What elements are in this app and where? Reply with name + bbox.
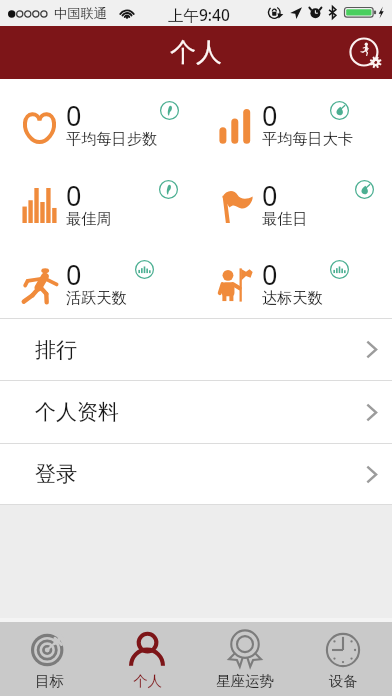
staticText: 0: [262, 177, 278, 214]
button[interactable]: 0: [0, 159, 196, 239]
button[interactable]: 登录: [0, 444, 392, 504]
staticText: 0: [262, 97, 278, 134]
staticText: 0: [262, 256, 278, 293]
staticText: 登录: [35, 461, 77, 487]
button[interactable]: 0: [0, 79, 196, 159]
staticText: 设备: [329, 672, 358, 690]
staticText: 排行: [35, 337, 77, 363]
button[interactable]: 个人: [98, 622, 196, 696]
staticText: 0: [66, 177, 82, 214]
button[interactable]: 0: [0, 239, 196, 318]
staticText: 平均每日大卡: [262, 129, 354, 148]
staticText: 0: [66, 256, 82, 293]
button[interactable]: 目标: [0, 622, 98, 696]
button[interactable]: Settings: [342, 29, 388, 75]
staticText: 上午9:40: [168, 4, 230, 25]
staticText: 平均每日步数: [66, 129, 158, 148]
staticText: 最佳周: [66, 209, 112, 228]
button[interactable]: 星座运势: [196, 622, 294, 696]
staticText: 个人资料: [35, 399, 119, 425]
staticText: 最佳日: [262, 209, 308, 228]
button[interactable]: 0: [196, 239, 392, 318]
staticText: 中国联通: [54, 5, 107, 22]
staticText: 星座运势: [216, 672, 274, 690]
staticText: 个人: [170, 36, 222, 69]
staticText: 活跃天数: [66, 288, 127, 307]
button[interactable]: 设备: [294, 622, 392, 696]
button[interactable]: 0: [196, 159, 392, 239]
staticText: 目标: [35, 672, 64, 690]
staticText: 个人: [133, 672, 162, 690]
button[interactable]: 个人资料: [0, 381, 392, 443]
button[interactable]: 0: [196, 79, 392, 159]
staticText: 0: [66, 97, 82, 134]
button[interactable]: 排行: [0, 319, 392, 380]
staticText: 达标天数: [262, 288, 323, 307]
